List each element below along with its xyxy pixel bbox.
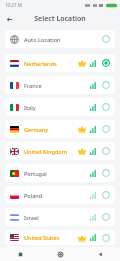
staticText: United States <box>24 234 60 241</box>
staticText: United Kingdom <box>24 148 67 155</box>
button[interactable]: Back <box>2 12 16 26</box>
button[interactable]: Germany <box>5 120 115 138</box>
staticText: Netherlands <box>24 60 57 67</box>
staticText: France <box>24 82 42 89</box>
staticText: 10:27 M <box>5 2 22 8</box>
staticText: Portugal <box>24 170 47 177</box>
button[interactable]: Auto Location <box>5 30 115 48</box>
button[interactable]: Portugal <box>5 164 115 182</box>
staticText: Auto Location <box>24 36 61 43</box>
button[interactable]: Back <box>80 247 120 261</box>
staticText: Italy <box>24 104 36 111</box>
staticText: Select Location <box>34 14 86 24</box>
button[interactable]: United Kingdom <box>5 142 115 160</box>
staticText: Poland <box>24 192 43 199</box>
button[interactable]: Home <box>40 247 80 261</box>
button[interactable]: United States <box>5 230 115 245</box>
button[interactable]: Netherlands <box>5 54 115 72</box>
button[interactable]: France <box>5 76 115 94</box>
staticText: Israel <box>24 214 39 221</box>
button[interactable]: Israel <box>5 208 115 226</box>
button[interactable]: Recents <box>0 247 40 261</box>
button[interactable]: Italy <box>5 98 115 116</box>
button[interactable]: Poland <box>5 186 115 204</box>
staticText: Germany <box>24 126 49 133</box>
